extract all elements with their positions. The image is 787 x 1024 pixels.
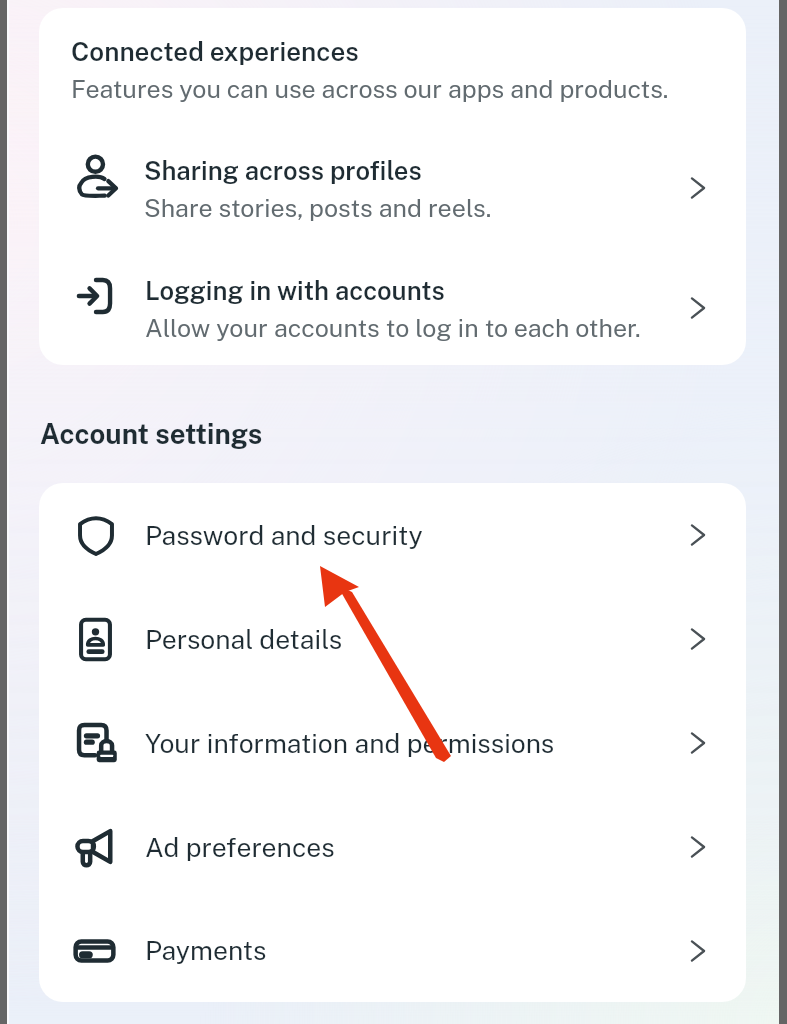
staticText: Account settings	[40, 418, 263, 450]
staticText: Personal details	[145, 624, 690, 655]
staticText: Sharing across profiles	[144, 156, 422, 186]
other: Open Logging in with accounts	[690, 296, 706, 320]
staticText: Payments	[145, 935, 690, 966]
button[interactable]: Payments	[39, 899, 746, 1002]
staticText: Connected experiences	[71, 36, 359, 67]
button[interactable]: Logging in with accounts	[39, 260, 746, 334]
other: Open Sharing across profiles	[690, 176, 706, 200]
button[interactable]: Password and security	[39, 483, 746, 587]
staticText: Logging in with accounts	[145, 276, 445, 306]
staticText: Allow your accounts to log in to each ot…	[145, 313, 641, 342]
button[interactable]: Ad preferences	[39, 795, 746, 899]
button[interactable]: Sharing across profiles	[39, 140, 746, 214]
staticText: Ad preferences	[145, 832, 690, 863]
staticText: Your information and permissions	[145, 728, 690, 759]
button[interactable]: Your information and permissions	[39, 691, 746, 795]
staticText: Features you can use across our apps and…	[71, 74, 669, 103]
staticText: Share stories, posts and reels.	[144, 193, 492, 222]
button[interactable]: Personal details	[39, 587, 746, 691]
staticText: Password and security	[145, 520, 690, 551]
